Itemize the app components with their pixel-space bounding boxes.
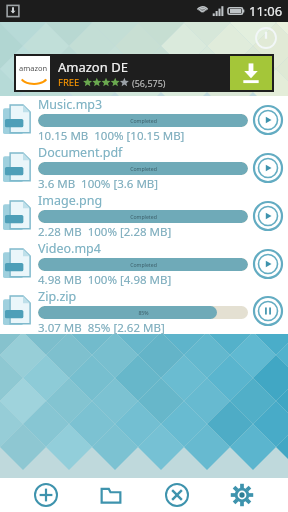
staticText: Amazon DE: [58, 58, 128, 76]
staticText: 2.28 MB 100% [2.28 MB]: [38, 224, 172, 240]
button[interactable]: Open file: [252, 248, 284, 280]
button[interactable]: Install app: [230, 56, 272, 90]
button[interactable]: Settings: [222, 478, 262, 512]
button[interactable]: Open file: [252, 104, 284, 136]
staticText: Video.mp4: [38, 240, 101, 257]
button[interactable]: Image.png: [0, 192, 288, 240]
button[interactable]: Power / exit: [254, 26, 278, 50]
staticText: 11:06: [249, 2, 283, 20]
staticText: Zip.zip: [38, 288, 77, 305]
button[interactable]: Cancel all: [157, 478, 197, 512]
staticText: Document.pdf: [38, 144, 123, 161]
staticText: 3.07 MB 85% [2.62 MB]: [38, 320, 165, 334]
staticText: Completed: [130, 261, 157, 268]
button[interactable]: Video.mp4: [0, 240, 288, 288]
staticText: 85%: [138, 309, 149, 316]
button[interactable]: Music.mp3: [0, 96, 288, 144]
button[interactable]: Zip.zip: [0, 288, 288, 334]
button[interactable]: Pause download: [252, 295, 284, 327]
staticText: 4.98 MB 100% [4.98 MB]: [38, 272, 172, 288]
staticText: (56,575): [132, 77, 166, 89]
staticText: Completed: [130, 117, 157, 124]
staticText: amazon: [19, 63, 48, 73]
staticText: Completed: [130, 165, 157, 172]
button[interactable]: Open file: [252, 152, 284, 184]
staticText: Completed: [130, 213, 157, 220]
button[interactable]: Document.pdf: [0, 144, 288, 192]
button[interactable]: Open folder: [91, 478, 131, 512]
staticText: 3.6 MB 100% [3.6 MB]: [38, 176, 159, 192]
staticText: 10.15 MB 100% [10.15 MB]: [38, 128, 185, 144]
staticText: FREE: [58, 76, 80, 89]
staticText: Music.mp3: [38, 96, 103, 113]
staticText: Image.png: [38, 192, 103, 209]
button[interactable]: Add download: [26, 478, 66, 512]
button[interactable]: amazon: [14, 54, 274, 92]
button[interactable]: Open file: [252, 200, 284, 232]
